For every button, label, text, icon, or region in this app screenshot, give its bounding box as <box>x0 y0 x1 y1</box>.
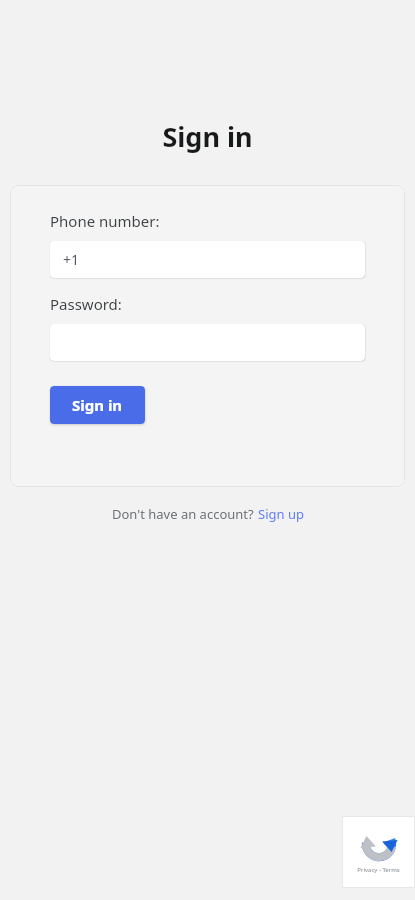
button[interactable]: +1 <box>50 241 365 278</box>
staticText: Phone number: <box>50 211 160 231</box>
staticText: Password: <box>50 294 122 314</box>
staticText: Privacy - Terms <box>357 866 400 874</box>
staticText: Sign up <box>258 505 304 523</box>
staticText: Sign in <box>72 395 123 415</box>
staticText: Don't have an account? <box>112 505 258 523</box>
staticText: +1 <box>63 250 80 269</box>
staticText: Sign in <box>0 118 415 155</box>
button[interactable]: reCAPTCHA privacy and terms <box>342 816 415 888</box>
button[interactable]: Sign in <box>50 386 145 424</box>
button[interactable]: Sign up <box>258 505 304 523</box>
